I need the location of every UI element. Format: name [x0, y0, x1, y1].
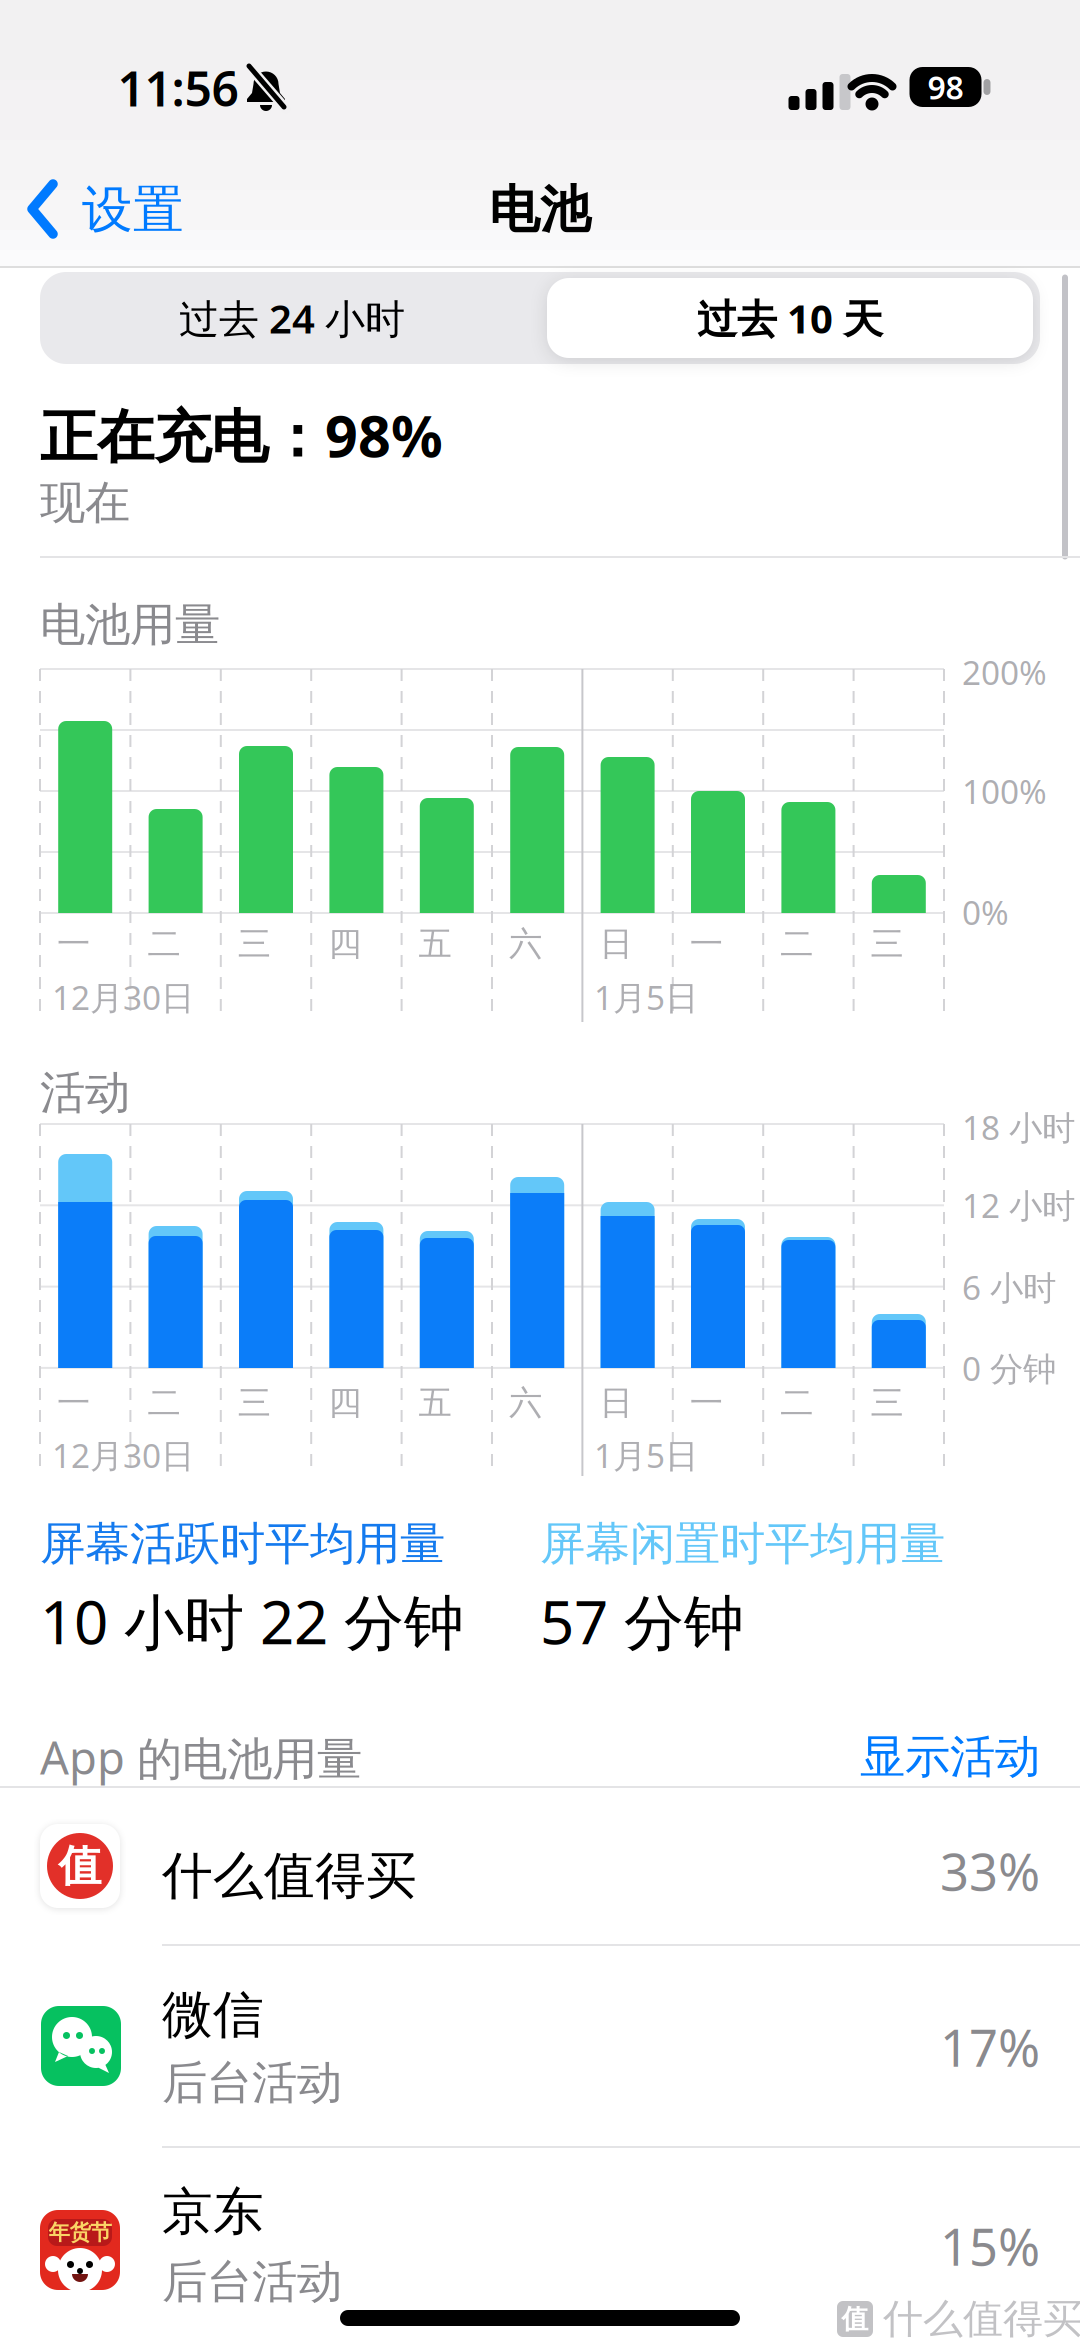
staticText: 显示活动	[860, 1729, 1040, 1785]
staticText: 后台活动	[162, 2055, 342, 2111]
staticText: 二	[147, 1382, 180, 1423]
staticText: 微信	[162, 1984, 264, 2046]
staticText: 1月5日	[594, 1433, 698, 1477]
staticText: 设置	[82, 179, 184, 241]
staticText: 值	[58, 1840, 101, 1892]
staticText: 12月30日	[52, 1433, 194, 1477]
button[interactable]: 设置	[26, 175, 276, 245]
staticText: 什么值得买	[883, 2294, 1080, 2343]
staticText: 活动	[40, 1065, 130, 1121]
button[interactable]: 过去 10 天	[545, 272, 1035, 364]
staticText: 33%	[940, 1837, 1040, 1905]
staticText: 京东	[162, 2181, 264, 2243]
staticText: 0 分钟	[962, 1346, 1056, 1390]
staticText: 200%	[962, 650, 1047, 694]
staticText: 三	[871, 1382, 904, 1423]
staticText: 100%	[962, 769, 1047, 813]
staticText: 六	[509, 923, 542, 964]
staticText: 屏幕活跃时平均用量	[40, 1516, 445, 1572]
staticText: 98	[927, 66, 963, 108]
staticText: 二	[147, 923, 180, 964]
staticText: 一	[690, 1382, 723, 1423]
staticText: 6 小时	[962, 1265, 1056, 1309]
staticText: 后台活动	[162, 2254, 342, 2310]
staticText: 五	[419, 1382, 452, 1423]
staticText: 10 小时 22 分钟	[40, 1581, 464, 1661]
staticText: 0%	[962, 890, 1009, 934]
staticText: 什么值得买	[162, 1845, 417, 1907]
staticText: 57 分钟	[540, 1581, 744, 1661]
staticText: 12 小时	[962, 1183, 1075, 1227]
staticText: 三	[238, 923, 271, 964]
staticText: App 的电池用量	[40, 1727, 362, 1787]
staticText: 屏幕闲置时平均用量	[540, 1516, 945, 1572]
staticText: 日	[599, 1382, 632, 1423]
staticText: 17%	[940, 2013, 1040, 2081]
staticText: 正在充电：98%	[40, 397, 443, 473]
staticText: 一	[57, 1382, 90, 1423]
staticText: 二	[780, 1382, 813, 1423]
staticText: 电池用量	[40, 597, 220, 653]
button[interactable]: 过去 24 小时	[47, 272, 537, 364]
staticText: 四	[328, 923, 361, 964]
staticText: 四	[328, 1382, 361, 1423]
staticText: 1月5日	[594, 975, 698, 1019]
staticText: 一	[690, 923, 723, 964]
staticText: 六	[509, 1382, 542, 1423]
button[interactable]: 显示活动	[740, 1722, 1040, 1792]
staticText: 三	[238, 1382, 271, 1423]
staticText: 二	[780, 923, 813, 964]
staticText: 11:56	[117, 56, 238, 120]
staticText: 电池	[489, 179, 591, 241]
button[interactable]: 值	[0, 1787, 1080, 1945]
staticText: 值	[841, 2303, 868, 2335]
staticText: 一	[57, 923, 90, 964]
staticText: 三	[871, 923, 904, 964]
staticText: 年货节	[48, 2219, 111, 2246]
staticText: 过去 24 小时	[179, 291, 405, 344]
staticText: 日	[599, 923, 632, 964]
staticText: 18 小时	[962, 1105, 1075, 1149]
staticText: 15%	[940, 2212, 1040, 2280]
button[interactable]: 年货节	[0, 2146, 1080, 2348]
staticText: 现在	[40, 475, 130, 531]
staticText: 12月30日	[52, 975, 194, 1019]
staticText: 过去 10 天	[697, 291, 883, 344]
staticText: 五	[419, 923, 452, 964]
button[interactable]: 微信	[0, 1946, 1080, 2146]
